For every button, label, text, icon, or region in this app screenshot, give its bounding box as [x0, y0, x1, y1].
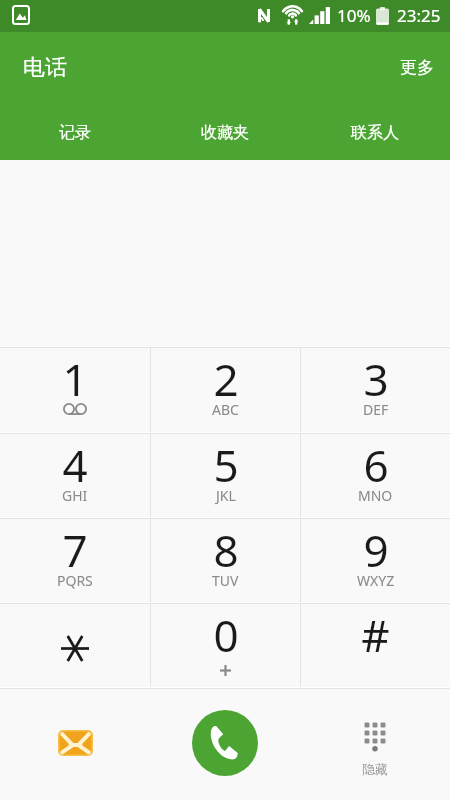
button[interactable]: #	[301, 603, 450, 688]
staticText: 5	[213, 435, 239, 495]
button[interactable]: 8	[151, 518, 300, 603]
staticText: 收藏夹	[201, 123, 249, 143]
staticText: 电话	[23, 54, 67, 82]
button[interactable]: 收藏夹	[150, 96, 300, 160]
button[interactable]: 5	[151, 433, 300, 518]
staticText: 9	[363, 520, 389, 580]
staticText: 1	[62, 349, 88, 409]
staticText: 联系人	[351, 123, 399, 143]
staticText: TUV	[212, 571, 239, 590]
staticText: MNO	[358, 486, 393, 505]
button[interactable]: 更多	[384, 42, 450, 87]
button[interactable]: Hide keypad	[300, 688, 450, 800]
button[interactable]: 2	[151, 347, 300, 433]
staticText: 6	[363, 435, 389, 495]
staticText: 8	[213, 520, 239, 580]
staticText: DEF	[363, 400, 389, 419]
staticText: 4	[62, 435, 88, 495]
staticText: PQRS	[57, 571, 93, 590]
staticText: ABC	[212, 400, 239, 419]
button[interactable]: 7	[0, 518, 150, 603]
button[interactable]: 9	[301, 518, 450, 603]
staticText: 10%	[337, 4, 371, 27]
staticText: 更多	[400, 57, 434, 78]
staticText: GHI	[62, 486, 88, 505]
button[interactable]: Call	[150, 688, 300, 800]
staticText: 3	[363, 349, 389, 409]
button[interactable]	[0, 603, 150, 688]
button[interactable]: 0	[151, 603, 300, 688]
button[interactable]: 6	[301, 433, 450, 518]
staticText: 2	[213, 349, 239, 409]
staticText: 0	[213, 605, 239, 665]
staticText: WXYZ	[357, 571, 395, 590]
button[interactable]: Messages	[0, 688, 150, 800]
button[interactable]: 3	[301, 347, 450, 433]
button[interactable]: 4	[0, 433, 150, 518]
button[interactable]: 1	[0, 347, 150, 433]
button[interactable]: 记录	[0, 96, 150, 160]
staticText: #	[361, 605, 390, 665]
staticText: 23:25	[397, 4, 441, 27]
button[interactable]: 联系人	[300, 96, 450, 160]
staticText: 记录	[59, 123, 91, 143]
staticText: 7	[62, 520, 88, 580]
staticText: 隐藏	[362, 761, 388, 777]
staticText: JKL	[216, 486, 236, 505]
